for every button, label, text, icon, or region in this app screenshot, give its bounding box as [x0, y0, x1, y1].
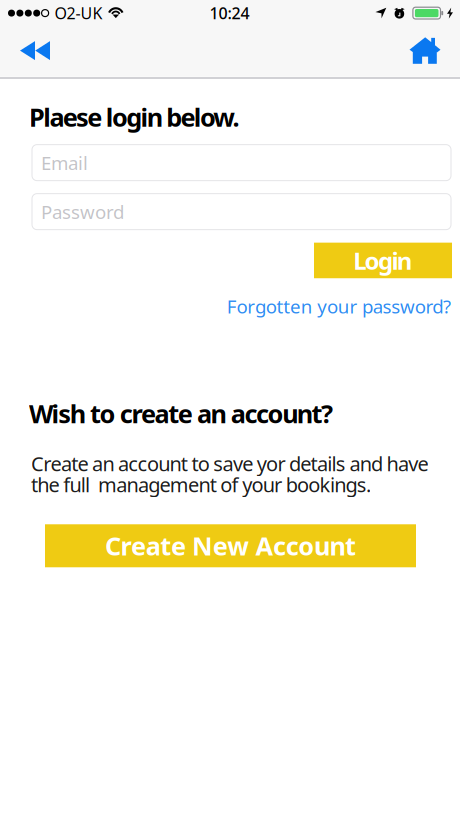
staticText: Plaese login below. [29, 100, 239, 134]
staticText: Wish to create an account? [29, 396, 333, 430]
staticText: 10:24 [209, 2, 249, 24]
staticText: Email [41, 150, 88, 175]
staticText: Login [353, 244, 413, 276]
staticText: Create New Account [105, 529, 356, 563]
button[interactable]: Home [398, 26, 450, 76]
button[interactable]: Create New Account [45, 524, 416, 567]
staticText: Forgotten your password? [227, 294, 451, 318]
staticText: Password [41, 199, 124, 224]
button[interactable]: Login [314, 243, 452, 278]
staticText: O2-UK [55, 2, 103, 24]
button[interactable]: Back [9, 26, 61, 76]
staticText: Create an account to save yor details an… [31, 450, 428, 498]
button[interactable]: Forgotten your password? [227, 291, 451, 321]
